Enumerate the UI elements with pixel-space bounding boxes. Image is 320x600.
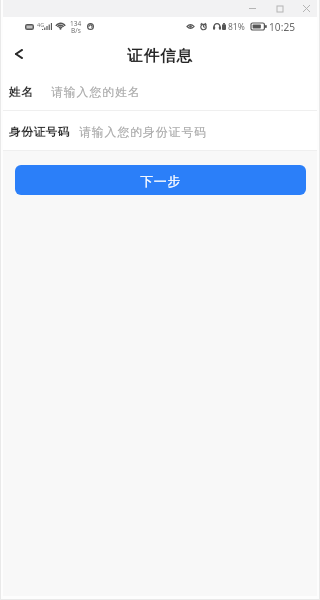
staticText: 134 [70, 19, 82, 28]
button[interactable]: 姓名 [0, 70, 320, 110]
button[interactable]: 下一步 [15, 165, 306, 195]
staticText: 下一步 [140, 173, 182, 189]
button[interactable]: 身份证号码 [0, 111, 320, 150]
staticText: 4G [37, 21, 45, 28]
button[interactable]: Maximize [266, 0, 293, 17]
button[interactable]: Back [0, 34, 37, 70]
staticText: B/s [71, 26, 81, 35]
staticText: 81% [228, 21, 245, 33]
staticText: 姓名 [9, 85, 34, 100]
staticText: 请输入您的姓名 [51, 85, 141, 100]
staticText: 10:25 [269, 20, 296, 34]
staticText: 请输入您的身份证号码 [79, 125, 207, 140]
button[interactable]: Minimize [239, 0, 266, 17]
button[interactable]: Close [293, 0, 320, 17]
staticText: 证件信息 [127, 46, 193, 66]
staticText: 身份证号码 [9, 125, 70, 140]
